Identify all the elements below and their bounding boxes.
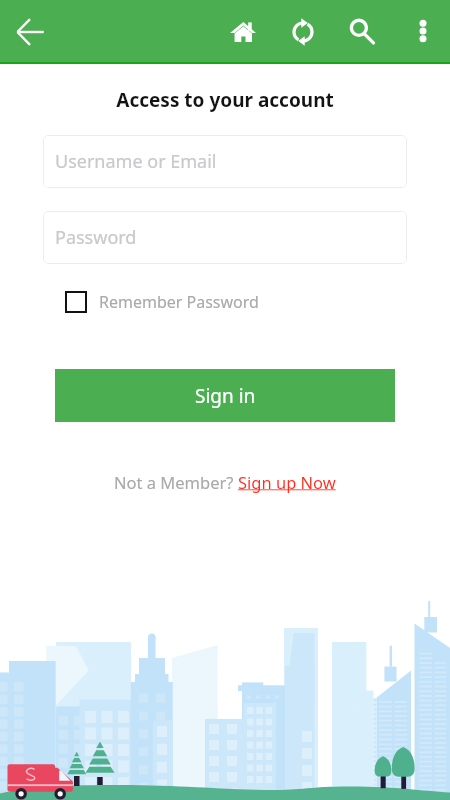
button[interactable]: Home: [219, 8, 267, 56]
button[interactable]: Sign in: [55, 369, 395, 422]
button[interactable]: Sign up Now: [238, 471, 336, 493]
button[interactable]: Remember Password: [65, 291, 259, 313]
button[interactable]: Search: [338, 8, 386, 56]
staticText: Not a Member?: [114, 471, 238, 493]
staticText: Remember Password: [99, 291, 259, 313]
button[interactable]: Username or Email: [43, 135, 407, 188]
button[interactable]: Back: [6, 8, 54, 56]
button[interactable]: Password: [43, 211, 407, 264]
staticText: Password: [55, 225, 137, 250]
staticText: Username or Email: [55, 149, 217, 174]
button[interactable]: More options: [400, 8, 445, 53]
button[interactable]: Refresh: [279, 8, 327, 56]
staticText: Access to your account: [0, 87, 450, 113]
staticText: Sign in: [195, 383, 256, 409]
